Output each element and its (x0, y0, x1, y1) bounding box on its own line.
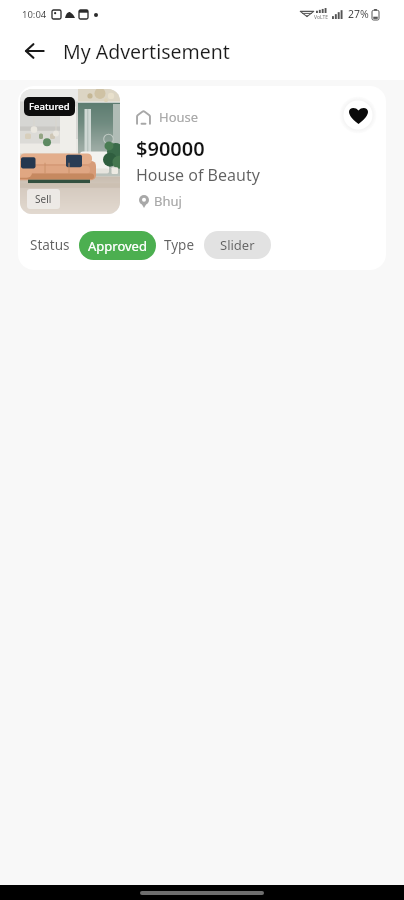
staticText: $90000 (136, 135, 205, 162)
button[interactable]: Approved (79, 231, 156, 260)
staticText: Sell (35, 192, 52, 206)
staticText: VoLTE (314, 14, 329, 21)
button[interactable]: Slider (204, 231, 271, 259)
staticText: House (159, 108, 199, 126)
staticText: Status (30, 236, 70, 254)
staticText: 27% (348, 7, 369, 21)
staticText: Bhuj (154, 192, 182, 210)
button[interactable]: Featured (18, 86, 386, 270)
button[interactable]: Back (16, 33, 52, 69)
staticText: Featured (29, 100, 70, 113)
staticText: Approved (88, 237, 147, 255)
staticText: My Advertisement (63, 38, 230, 65)
button[interactable]: Favorite (339, 96, 377, 134)
staticText: 10:04 (22, 8, 47, 21)
staticText: House of Beauty (136, 164, 260, 186)
staticText: Type (164, 236, 195, 254)
staticText: Slider (220, 236, 255, 254)
